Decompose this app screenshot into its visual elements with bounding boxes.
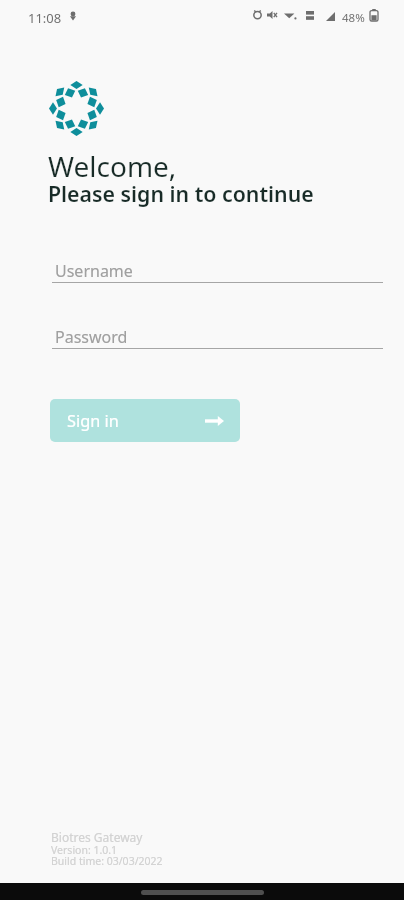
staticText: Version: 1.0.1 — [51, 843, 118, 857]
staticText: 11:08 — [28, 9, 62, 27]
button[interactable]: Sign in — [50, 399, 240, 442]
staticText: Biotres Gateway — [51, 829, 143, 845]
staticText: Build time: 03/03/2022 — [51, 854, 163, 868]
staticText: Password — [55, 326, 128, 348]
button[interactable]: Username — [52, 257, 383, 283]
button[interactable]: Password — [52, 323, 383, 349]
staticText: Please sign in to continue — [48, 179, 314, 208]
other: Biotres logo — [49, 81, 104, 136]
staticText: 48% — [342, 10, 365, 26]
staticText: Sign in — [67, 410, 119, 432]
staticText: Welcome, — [48, 147, 177, 185]
staticText: Username — [55, 260, 133, 282]
